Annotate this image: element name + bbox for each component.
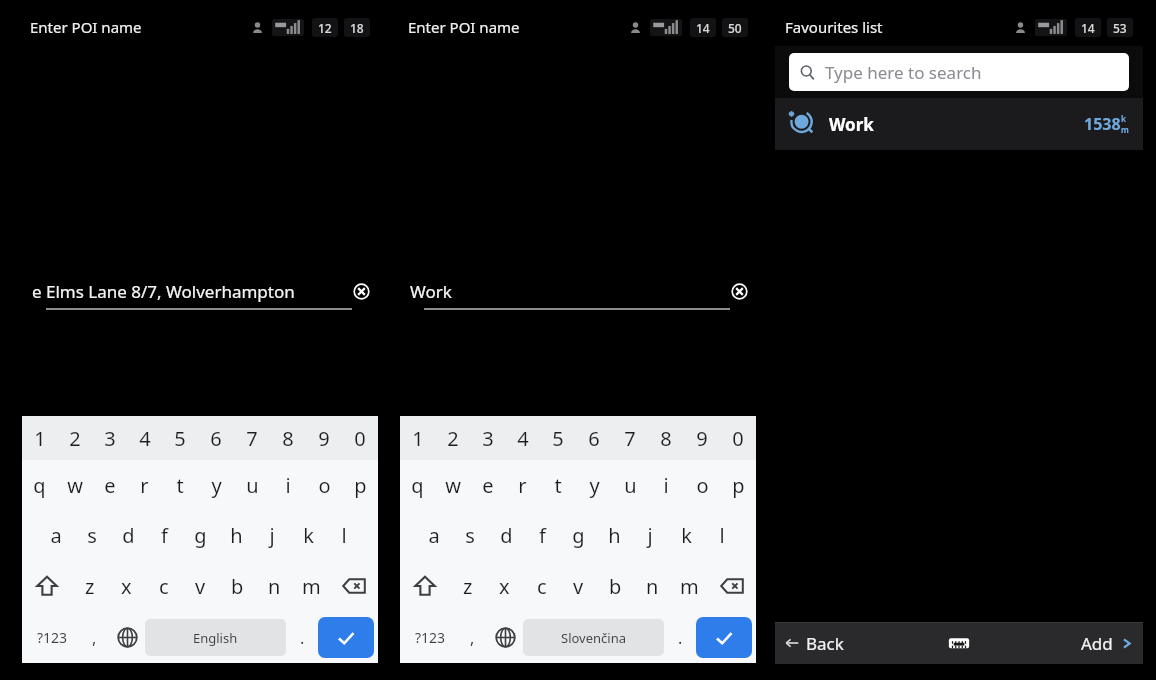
button[interactable]: k <box>668 510 704 560</box>
button[interactable]: h <box>218 510 254 560</box>
button[interactable]: z <box>449 560 486 612</box>
button[interactable]: f <box>146 510 182 560</box>
button[interactable]: k <box>290 510 326 560</box>
button[interactable]: s <box>74 510 110 560</box>
button[interactable]: Change language <box>110 612 145 663</box>
button[interactable]: w <box>435 460 470 510</box>
button[interactable]: r <box>127 460 162 510</box>
button[interactable]: 8 <box>270 416 306 460</box>
button[interactable]: v <box>560 560 597 612</box>
button[interactable]: r <box>505 460 540 510</box>
button[interactable]: u <box>612 460 648 510</box>
button[interactable]: i <box>648 460 684 510</box>
button[interactable]: m <box>293 560 330 612</box>
button[interactable]: Keyboard <box>897 622 1020 664</box>
button[interactable]: i <box>270 460 306 510</box>
button[interactable]: y <box>198 460 234 510</box>
button[interactable]: l <box>326 510 362 560</box>
button[interactable]: 6 <box>576 416 612 460</box>
button[interactable]: g <box>560 510 596 560</box>
button[interactable]: Work <box>404 274 752 308</box>
button[interactable]: 6 <box>198 416 234 460</box>
button[interactable]: w <box>57 460 92 510</box>
button[interactable]: Add <box>1020 622 1143 664</box>
button[interactable]: Clear text <box>348 278 374 304</box>
button[interactable]: x <box>108 560 145 612</box>
button[interactable]: h <box>596 510 632 560</box>
button[interactable]: Enter <box>318 617 374 658</box>
button[interactable]: e <box>92 460 127 510</box>
button[interactable]: 9 <box>684 416 720 460</box>
button[interactable]: 3 <box>470 416 505 460</box>
button[interactable]: Work <box>775 98 1143 150</box>
button[interactable]: a <box>38 510 74 560</box>
button[interactable]: Change language <box>488 612 523 663</box>
button[interactable]: 0 <box>342 416 378 460</box>
button[interactable]: q <box>400 460 435 510</box>
button[interactable]: d <box>488 510 524 560</box>
button[interactable]: x <box>486 560 523 612</box>
button[interactable]: 2 <box>57 416 92 460</box>
button[interactable]: p <box>720 460 756 510</box>
button[interactable]: j <box>254 510 290 560</box>
button[interactable]: g <box>182 510 218 560</box>
button[interactable]: 5 <box>540 416 576 460</box>
button[interactable]: 5 <box>162 416 198 460</box>
button[interactable]: m <box>671 560 708 612</box>
button[interactable]: e <box>470 460 505 510</box>
button[interactable]: ?123 <box>404 612 456 663</box>
button[interactable]: b <box>219 560 256 612</box>
button[interactable]: . <box>664 612 696 663</box>
button[interactable]: c <box>523 560 560 612</box>
button[interactable]: 1 <box>22 416 57 460</box>
staticText: 6 <box>588 425 600 452</box>
button[interactable]: o <box>684 460 720 510</box>
button[interactable]: y <box>576 460 612 510</box>
button[interactable]: c <box>145 560 182 612</box>
button[interactable]: u <box>234 460 270 510</box>
button[interactable]: f <box>524 510 560 560</box>
button[interactable]: , <box>78 612 110 663</box>
button[interactable]: q <box>22 460 57 510</box>
button[interactable]: ?123 <box>26 612 78 663</box>
button[interactable]: 2 <box>435 416 470 460</box>
button[interactable]: a <box>416 510 452 560</box>
button[interactable]: b <box>597 560 634 612</box>
button[interactable]: , <box>456 612 488 663</box>
button[interactable]: Back <box>775 622 897 664</box>
button[interactable]: Clear text <box>726 278 752 304</box>
button[interactable]: 3 <box>92 416 127 460</box>
button[interactable]: Backspace <box>330 560 378 612</box>
button[interactable]: n <box>634 560 671 612</box>
button[interactable]: v <box>182 560 219 612</box>
button[interactable]: t <box>162 460 198 510</box>
button[interactable]: Type here to search <box>789 53 1129 91</box>
staticText: i <box>285 472 291 499</box>
button[interactable]: 0 <box>720 416 756 460</box>
staticText: ?123 <box>415 628 446 647</box>
button[interactable]: Shift <box>400 560 449 612</box>
button[interactable]: Enter <box>696 617 752 658</box>
button[interactable]: Backspace <box>708 560 756 612</box>
button[interactable]: e Elms Lane 8/7, Wolverhampton <box>26 274 374 308</box>
button[interactable]: n <box>256 560 293 612</box>
button[interactable]: 7 <box>234 416 270 460</box>
button[interactable]: . <box>286 612 318 663</box>
button[interactable]: 7 <box>612 416 648 460</box>
button[interactable]: z <box>71 560 108 612</box>
button[interactable]: s <box>452 510 488 560</box>
button[interactable]: 4 <box>505 416 540 460</box>
button[interactable]: l <box>704 510 740 560</box>
button[interactable]: Slovenčina <box>523 619 664 656</box>
button[interactable]: o <box>306 460 342 510</box>
button[interactable]: 9 <box>306 416 342 460</box>
button[interactable]: Shift <box>22 560 71 612</box>
button[interactable]: p <box>342 460 378 510</box>
button[interactable]: t <box>540 460 576 510</box>
button[interactable]: 1 <box>400 416 435 460</box>
button[interactable]: j <box>632 510 668 560</box>
button[interactable]: 4 <box>127 416 162 460</box>
button[interactable]: English <box>145 619 286 656</box>
button[interactable]: d <box>110 510 146 560</box>
button[interactable]: 8 <box>648 416 684 460</box>
